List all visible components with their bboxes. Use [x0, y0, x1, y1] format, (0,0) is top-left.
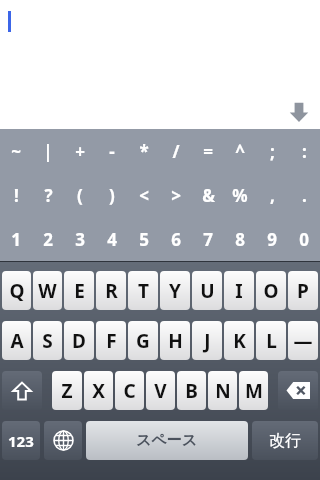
staticText: %: [232, 184, 248, 207]
staticText: スペース: [136, 431, 198, 450]
button[interactable]: Backspace: [278, 371, 318, 410]
staticText: 6: [171, 228, 181, 251]
button[interactable]: F: [96, 321, 126, 360]
button[interactable]: スペース: [86, 421, 248, 460]
button[interactable]: B: [177, 371, 206, 410]
button[interactable]: V: [146, 371, 175, 410]
staticText: Q: [9, 278, 25, 304]
staticText: +: [75, 140, 85, 163]
staticText: 5: [139, 228, 149, 251]
button[interactable]: ): [96, 173, 128, 217]
button[interactable]: .: [288, 173, 320, 217]
button[interactable]: ^: [224, 129, 256, 173]
button[interactable]: 4: [96, 217, 128, 261]
button[interactable]: ;: [256, 129, 288, 173]
button[interactable]: S: [33, 321, 62, 360]
button[interactable]: Y: [160, 271, 190, 310]
button[interactable]: 2: [32, 217, 64, 261]
button[interactable]: M: [239, 371, 268, 410]
button[interactable]: 8: [224, 217, 256, 261]
button[interactable]: =: [192, 129, 224, 173]
staticText: N: [215, 378, 231, 404]
button[interactable]: -: [96, 129, 128, 173]
button[interactable]: X: [84, 371, 113, 410]
button[interactable]: T: [128, 271, 158, 310]
button[interactable]: &: [192, 173, 224, 217]
button[interactable]: 7: [192, 217, 224, 261]
button[interactable]: ,: [256, 173, 288, 217]
button[interactable]: I: [224, 271, 254, 310]
staticText: D: [72, 328, 86, 354]
button[interactable]: D: [64, 321, 94, 360]
button[interactable]: C: [115, 371, 144, 410]
staticText: 3: [75, 228, 85, 251]
button[interactable]: N: [208, 371, 237, 410]
staticText: X: [92, 378, 105, 404]
staticText: 2: [43, 228, 53, 251]
button[interactable]: Q: [2, 271, 31, 310]
staticText: /: [172, 140, 180, 163]
staticText: V: [154, 378, 167, 404]
button[interactable]: |: [32, 129, 64, 173]
staticText: 8: [235, 228, 245, 251]
button[interactable]: Hide keyboard: [288, 101, 310, 123]
staticText: M: [245, 378, 263, 404]
button[interactable]: 改行: [252, 421, 318, 460]
button[interactable]: 1: [0, 217, 32, 261]
button[interactable]: (: [64, 173, 96, 217]
staticText: =: [203, 140, 213, 163]
staticText: 0: [299, 228, 309, 251]
button[interactable]: Shift: [2, 371, 42, 410]
staticText: G: [136, 328, 150, 354]
button[interactable]: P: [288, 271, 318, 310]
button[interactable]: 123: [2, 421, 40, 460]
staticText: —: [293, 328, 313, 354]
button[interactable]: ~: [0, 129, 32, 173]
button[interactable]: W: [33, 271, 62, 310]
button[interactable]: Z: [52, 371, 82, 410]
staticText: ): [109, 184, 115, 207]
button[interactable]: 9: [256, 217, 288, 261]
button[interactable]: !: [0, 173, 32, 217]
button[interactable]: :: [288, 129, 320, 173]
button[interactable]: %: [224, 173, 256, 217]
staticText: 123: [8, 431, 34, 451]
staticText: R: [105, 278, 118, 304]
staticText: :: [302, 140, 307, 163]
button[interactable]: J: [192, 321, 222, 360]
button[interactable]: H: [160, 321, 190, 360]
button[interactable]: K: [224, 321, 254, 360]
button[interactable]: *: [128, 129, 160, 173]
button[interactable]: +: [64, 129, 96, 173]
button[interactable]: O: [256, 271, 286, 310]
button[interactable]: A: [2, 321, 31, 360]
staticText: L: [266, 328, 277, 354]
staticText: U: [200, 278, 215, 304]
button[interactable]: /: [160, 129, 192, 173]
button[interactable]: 0: [288, 217, 320, 261]
button[interactable]: Change keyboard language: [44, 421, 82, 460]
staticText: &: [202, 184, 215, 207]
button[interactable]: G: [128, 321, 158, 360]
staticText: P: [297, 278, 309, 304]
button[interactable]: R: [96, 271, 126, 310]
button[interactable]: E: [64, 271, 94, 310]
staticText: B: [185, 378, 198, 404]
button[interactable]: 3: [64, 217, 96, 261]
staticText: W: [38, 278, 57, 304]
button[interactable]: —: [288, 321, 318, 360]
button[interactable]: 5: [128, 217, 160, 261]
button[interactable]: U: [192, 271, 222, 310]
button[interactable]: L: [256, 321, 286, 360]
staticText: J: [204, 328, 211, 354]
staticText: C: [123, 378, 136, 404]
button[interactable]: <: [128, 173, 160, 217]
staticText: ~: [11, 140, 21, 163]
staticText: I: [235, 278, 243, 304]
staticText: E: [74, 278, 85, 304]
button[interactable]: >: [160, 173, 192, 217]
staticText: .: [302, 184, 307, 207]
button[interactable]: ?: [32, 173, 64, 217]
button[interactable]: 6: [160, 217, 192, 261]
staticText: 7: [203, 228, 213, 251]
